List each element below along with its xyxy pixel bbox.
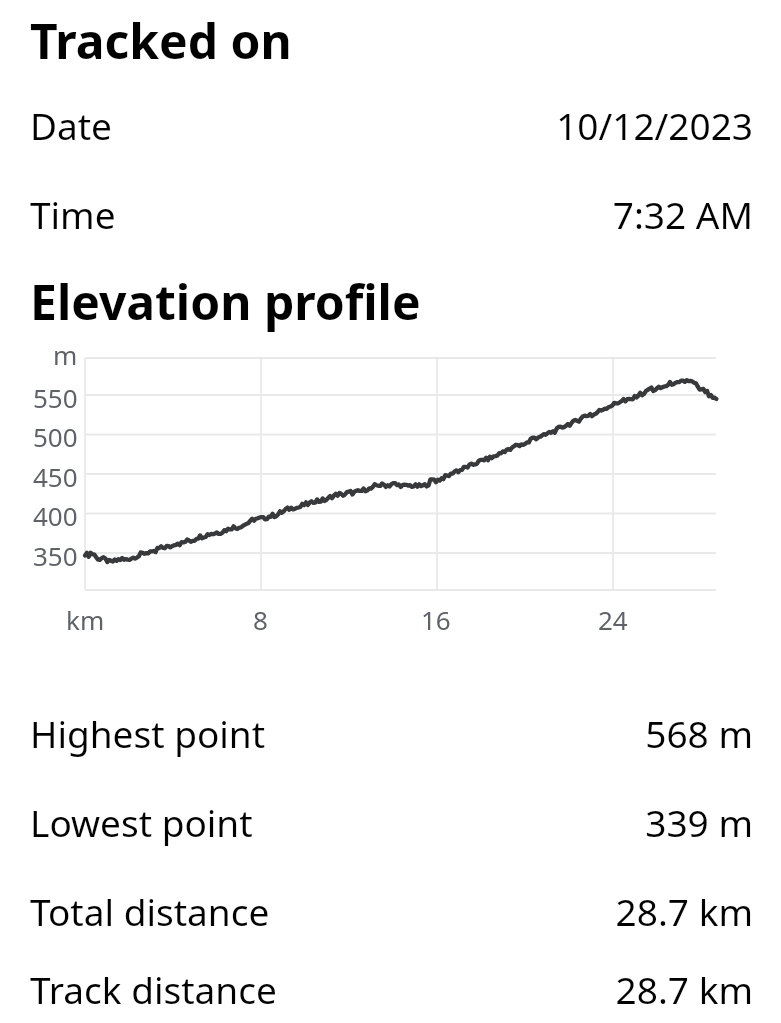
button[interactable]: Total distance (0, 866, 781, 955)
staticText: Highest point (30, 708, 266, 758)
staticText: Date (30, 100, 112, 150)
staticText: 8 (253, 602, 268, 637)
staticText: 568 m (645, 708, 753, 758)
staticText: 24 (598, 602, 628, 637)
staticText: Lowest point (30, 797, 253, 847)
staticText: 16 (421, 602, 451, 637)
button[interactable]: Time (0, 169, 781, 258)
staticText: 28.7 km (615, 886, 753, 936)
staticText: Elevation profile (30, 269, 421, 334)
button[interactable]: Lowest point (0, 777, 781, 866)
staticText: 400 (33, 498, 78, 533)
staticText: 550 (33, 380, 78, 415)
staticText: Track distance (30, 964, 277, 1014)
staticText: 10/12/2023 (556, 100, 753, 150)
staticText: Tracked on (30, 8, 292, 73)
staticText: Total distance (30, 886, 270, 936)
button[interactable]: Highest point (0, 688, 781, 777)
staticText: Time (30, 189, 116, 239)
button[interactable]: Date (0, 80, 781, 169)
staticText: 339 m (645, 797, 753, 847)
staticText: 500 (33, 419, 78, 454)
staticText: 7:32 AM (612, 189, 753, 239)
staticText: m (53, 337, 78, 372)
button[interactable]: Track distance (0, 955, 781, 1023)
staticText: 450 (33, 459, 78, 494)
staticText: 28.7 km (615, 964, 753, 1014)
staticText: 350 (33, 538, 78, 573)
staticText: km (66, 602, 105, 637)
